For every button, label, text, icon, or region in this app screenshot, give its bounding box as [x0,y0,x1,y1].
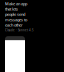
staticText: Make an app that lets people send messag… [5,1,27,28]
staticText: Claude · Sonnet 4.5 [5,29,34,32]
